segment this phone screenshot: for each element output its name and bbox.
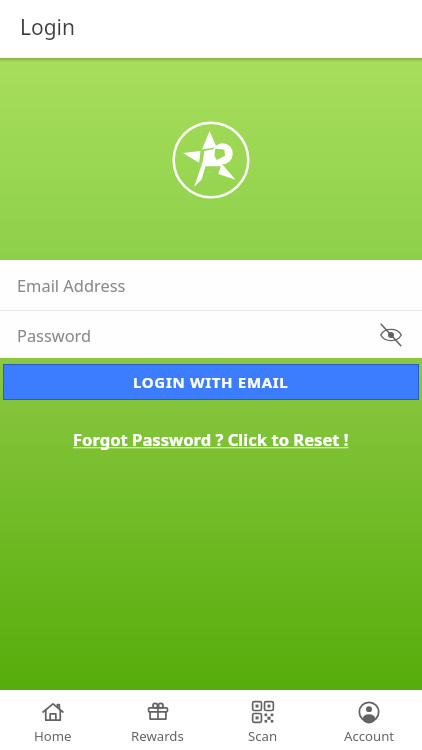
staticText: Email Address xyxy=(17,274,126,296)
staticText: Home xyxy=(34,727,72,745)
button[interactable]: Forgot Password ? Click to Reset ! xyxy=(65,426,357,453)
staticText: Login xyxy=(20,13,76,42)
staticText: Account xyxy=(344,727,395,745)
staticText: Rewards xyxy=(131,727,184,745)
button[interactable]: Show password xyxy=(374,318,408,352)
button[interactable]: Password xyxy=(0,311,422,358)
staticText: LOGIN WITH EMAIL xyxy=(133,372,289,392)
button[interactable]: LOGIN WITH EMAIL xyxy=(4,365,418,399)
button[interactable]: Rewards xyxy=(105,690,210,750)
button[interactable]: Email Address xyxy=(0,260,422,310)
button[interactable]: Account xyxy=(316,690,422,750)
button[interactable]: Scan xyxy=(210,690,316,750)
staticText: Password xyxy=(17,324,92,346)
staticText: Scan xyxy=(248,727,278,745)
button[interactable]: Home xyxy=(0,690,105,750)
